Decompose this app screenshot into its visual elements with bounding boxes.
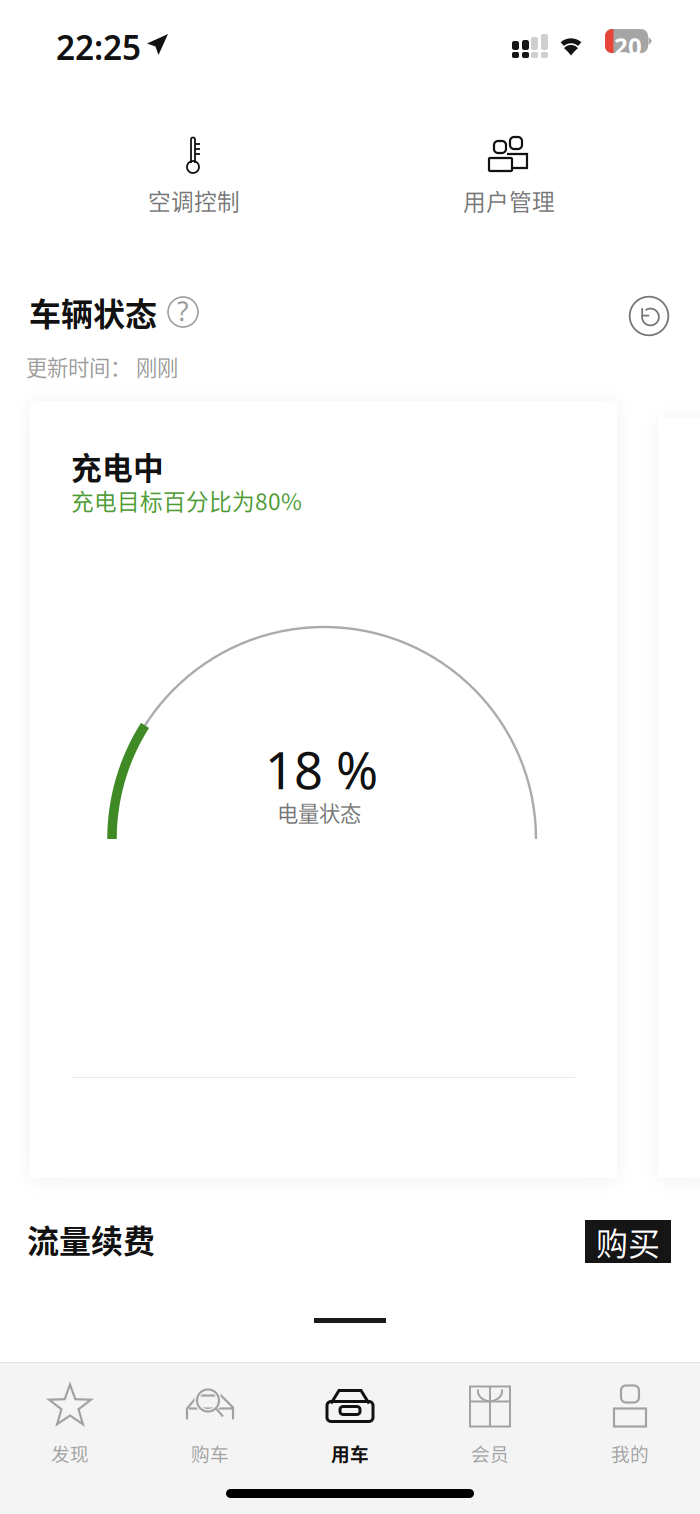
staticText: 我的 [611,1439,649,1466]
staticText: ? [177,293,189,329]
button[interactable]: 用户管理 [419,136,599,236]
button[interactable]: 用车 [280,1370,420,1480]
button[interactable]: 我的 [560,1370,700,1480]
staticText: 流量续费 [27,1216,155,1262]
staticText: 电量状态 [277,797,361,828]
staticText: 20 [614,30,642,62]
staticText: 购买 [596,1218,660,1265]
staticText: 充电中 [71,444,164,488]
button[interactable]: 发现 [0,1370,140,1480]
button[interactable]: 空调控制 [104,136,284,236]
button[interactable]: 会员 [420,1370,560,1480]
staticText: 车辆状态 [29,289,157,335]
staticText: 22:25 [56,25,141,69]
staticText: 用户管理 [463,184,555,217]
staticText: 更新时间： 刚刚 [26,351,178,382]
staticText: 发现 [51,1439,89,1466]
button[interactable]: Refresh [629,296,669,336]
staticText: 充电目标百分比为80% [71,484,302,517]
button[interactable]: 购买 [585,1220,671,1263]
button[interactable]: 购车 [140,1370,280,1480]
staticText: 空调控制 [148,184,240,217]
staticText: 18 % [265,736,378,803]
staticText: 会员 [471,1439,509,1466]
staticText: 用车 [331,1439,369,1466]
staticText: 购车 [191,1439,229,1466]
